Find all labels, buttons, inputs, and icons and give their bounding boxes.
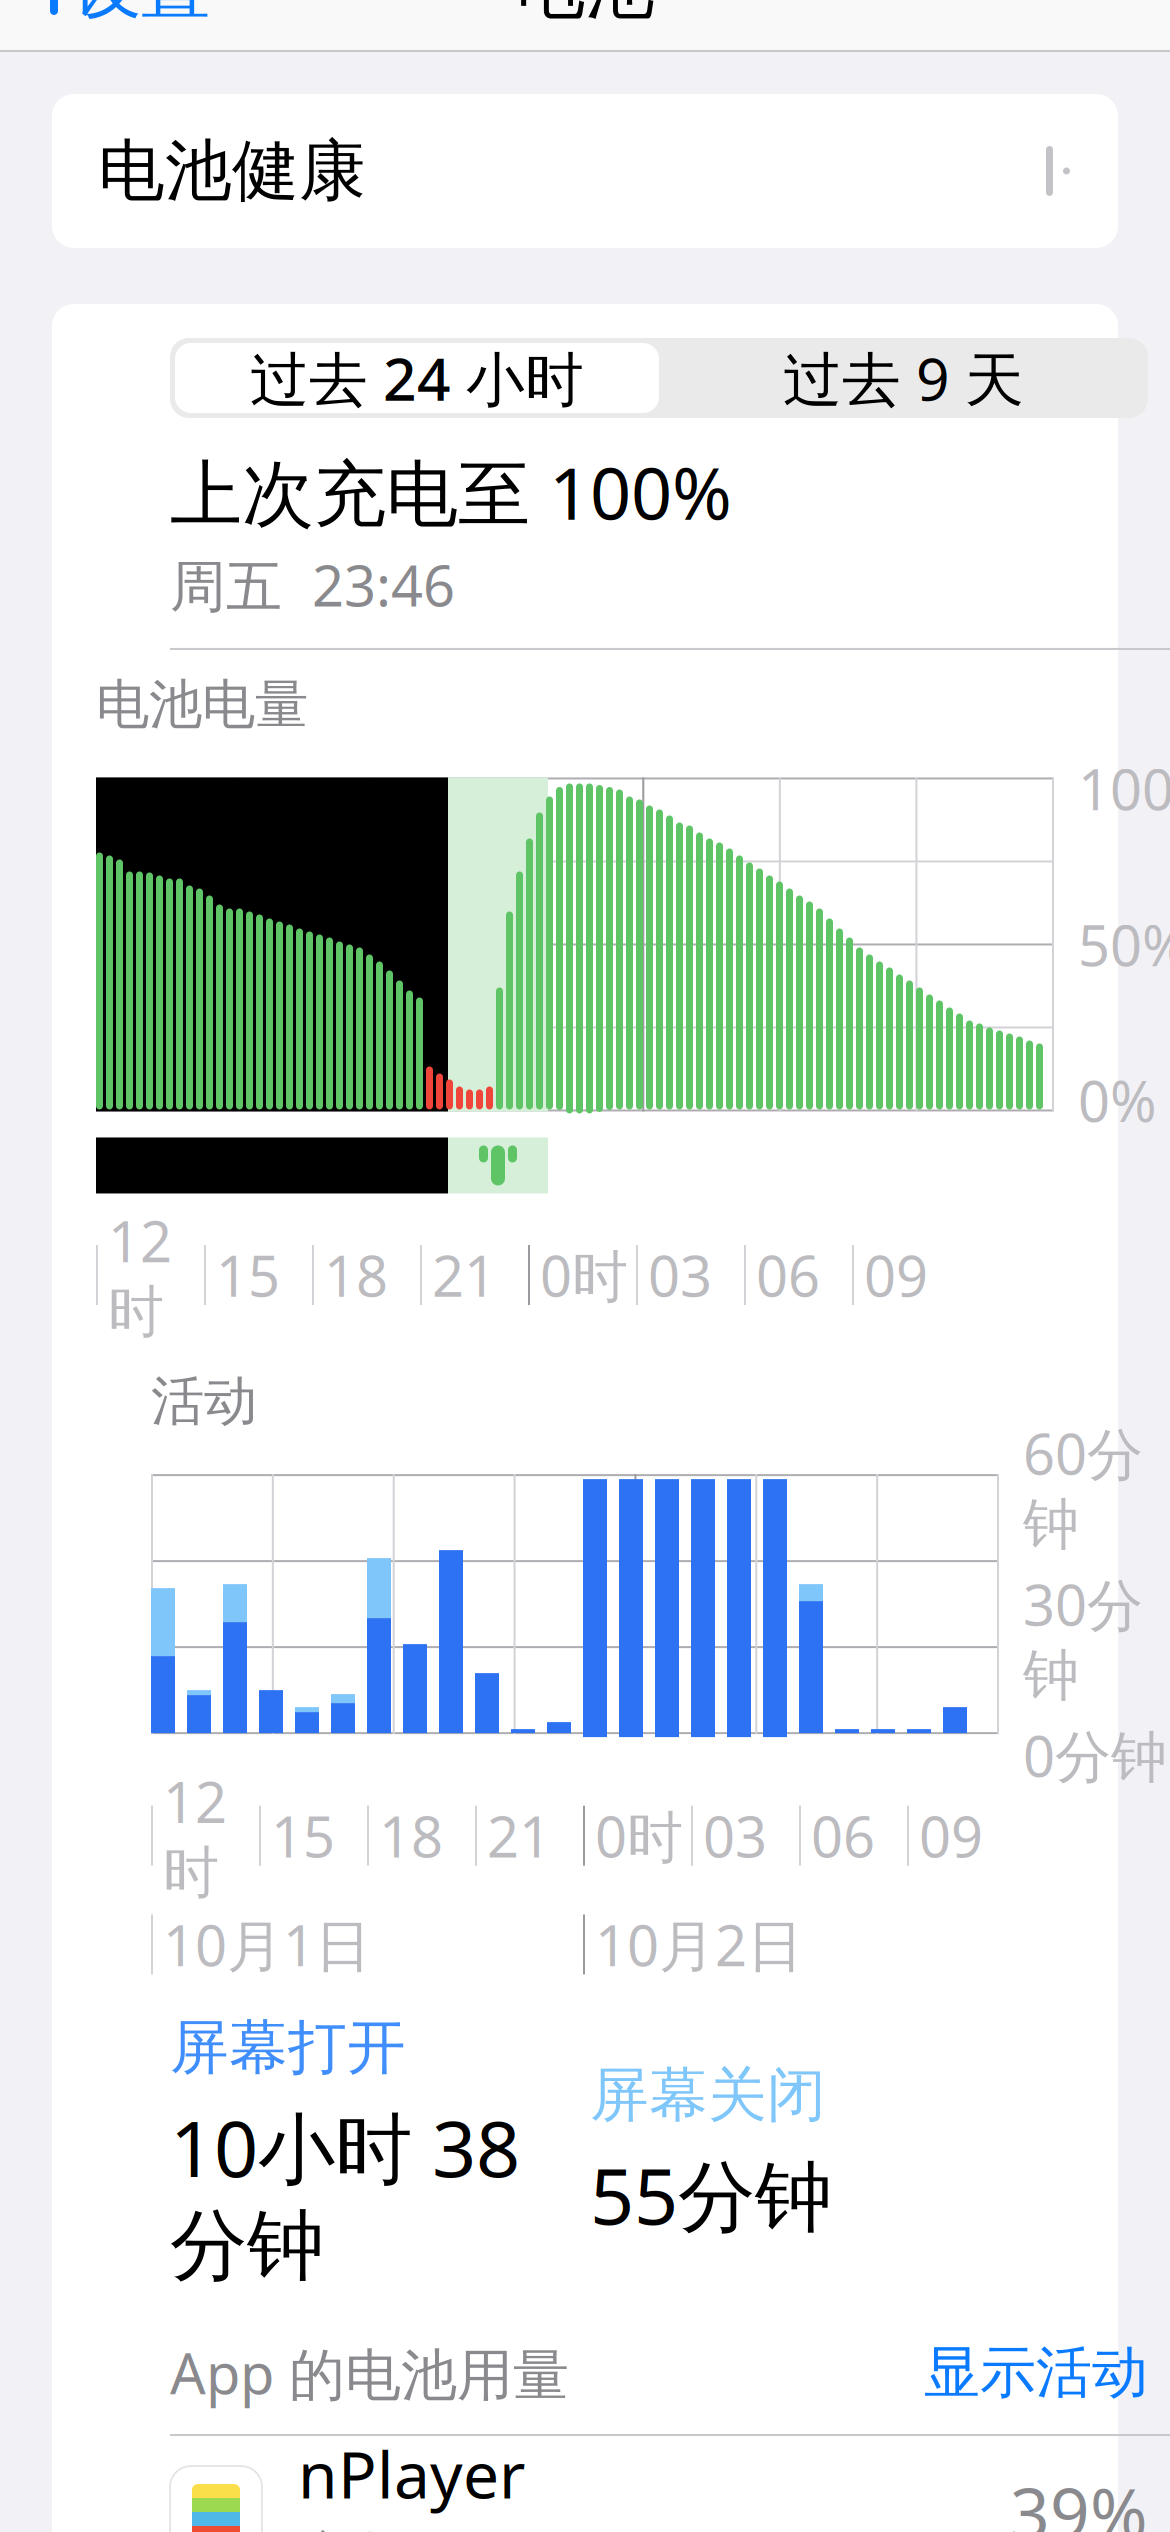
- staticText: 0时: [540, 1238, 628, 1312]
- staticText: 50%: [1078, 907, 1170, 982]
- button[interactable]: nPlayer: [126, 2436, 1170, 2532]
- staticText: 屏幕打开: [170, 2012, 406, 2084]
- staticText: 音频: [298, 2524, 410, 2532]
- staticText: 06: [811, 1798, 875, 1873]
- staticText: 显示活动: [924, 2338, 1148, 2407]
- staticText: 0%: [1078, 1063, 1157, 1137]
- staticText: 10月2日: [595, 1907, 803, 1982]
- staticText: 55分钟: [590, 2143, 832, 2246]
- staticText: 21: [432, 1238, 496, 1312]
- staticText: 上次充电至 100%: [170, 444, 732, 540]
- staticText: 09: [864, 1238, 928, 1312]
- staticText: 09: [919, 1798, 983, 1873]
- staticText: 0时: [595, 1798, 683, 1873]
- button[interactable]: 过去 24 小时: [175, 343, 659, 413]
- staticText: 39%: [1010, 2466, 1148, 2532]
- staticText: 屏幕关闭: [590, 2059, 826, 2131]
- staticText: 06: [756, 1238, 820, 1312]
- staticText: 12时: [163, 1764, 227, 1907]
- staticText: 电池: [516, 0, 654, 31]
- staticText: 60分钟: [1023, 1416, 1143, 1559]
- staticText: App 的电池用量: [170, 2335, 569, 2410]
- button[interactable]: 设置: [0, 0, 234, 53]
- staticText: 0分钟: [1023, 1718, 1167, 1792]
- staticText: 过去 24 小时: [250, 339, 584, 417]
- button[interactable]: 屏幕关闭: [590, 2059, 826, 2131]
- button[interactable]: 过去 9 天: [659, 343, 1148, 413]
- button[interactable]: 显示活动: [924, 2338, 1148, 2407]
- staticText: 15: [216, 1238, 280, 1312]
- staticText: 周五 23:46: [170, 548, 455, 622]
- staticText: 30分钟: [1023, 1567, 1143, 1710]
- staticText: 21: [487, 1798, 551, 1873]
- button[interactable]: 电池健康: [52, 94, 1118, 248]
- staticText: 设置: [72, 0, 210, 31]
- staticText: 12时: [108, 1203, 172, 1347]
- staticText: 10小时 38分钟: [170, 2096, 520, 2293]
- staticText: 18: [324, 1238, 388, 1312]
- staticText: 10月1日: [163, 1907, 371, 1982]
- staticText: 电池电量: [96, 672, 308, 737]
- staticText: 100%: [1078, 751, 1170, 826]
- staticText: 15: [271, 1798, 335, 1873]
- staticText: 电池健康: [98, 130, 366, 212]
- staticText: 03: [703, 1798, 767, 1873]
- staticText: nPlayer: [298, 2431, 525, 2516]
- staticText: 03: [648, 1238, 712, 1312]
- staticText: 过去 9 天: [783, 339, 1024, 417]
- staticText: 活动: [151, 1369, 257, 1434]
- button[interactable]: 屏幕打开: [170, 2012, 406, 2084]
- staticText: 18: [379, 1798, 443, 1873]
